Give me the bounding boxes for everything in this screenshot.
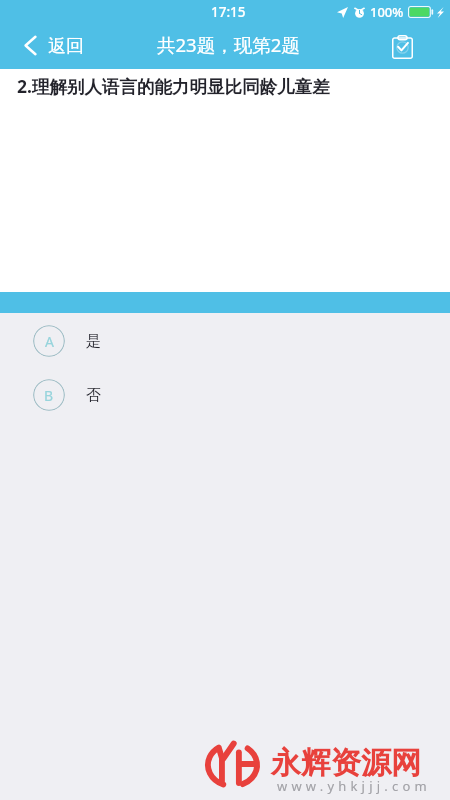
staticText: 永辉资源网 — [271, 744, 421, 782]
staticText: B — [44, 386, 54, 405]
staticText: 否 — [86, 386, 101, 405]
button[interactable]: 答题卡 — [354, 24, 450, 68]
staticText: www.yhkjjj.com — [277, 777, 431, 795]
button[interactable]: B — [0, 379, 450, 411]
staticText: 2.理解别人语言的能力明显比同龄儿童差 — [17, 74, 330, 98]
staticText: A — [45, 332, 54, 351]
staticText: 100% — [370, 3, 404, 21]
button[interactable]: 返回 — [0, 24, 98, 68]
staticText: 17:15 — [211, 3, 246, 21]
staticText: 共23题，现第2题 — [157, 32, 300, 57]
button[interactable]: A — [0, 325, 450, 357]
staticText: 返回 — [48, 35, 84, 58]
staticText: 是 — [86, 332, 101, 351]
